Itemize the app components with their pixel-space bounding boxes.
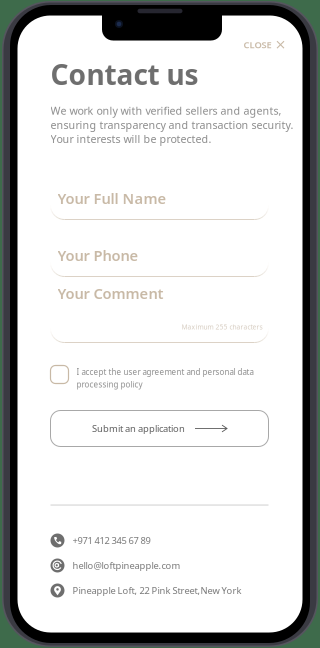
staticText: Pineapple Loft, 22 Pink Street,New York: [72, 584, 241, 597]
button[interactable]: hello@loftpineapple.com: [50, 557, 268, 573]
staticText: Your Comment: [57, 283, 163, 303]
staticText: processing policy: [76, 379, 142, 390]
button[interactable]: Pineapple Loft, 22 Pink Street,New York: [50, 582, 268, 598]
staticText: I accept the user agreement and personal…: [76, 366, 253, 377]
staticText: CLOSE: [243, 38, 271, 51]
staticText: We work only with verified sellers and a…: [50, 103, 281, 118]
button[interactable]: I accept the user agreement and personal…: [50, 365, 253, 390]
button[interactable]: CLOSE: [239, 34, 288, 55]
button[interactable]: +971 412 345 67 89: [50, 532, 268, 548]
staticText: +971 412 345 67 89: [72, 534, 150, 547]
staticText: Your Full Name: [57, 188, 166, 208]
button[interactable]: Submit an application: [50, 410, 268, 446]
staticText: Maximum 255 characters: [181, 322, 262, 331]
staticText: Your interests will be protected.: [50, 132, 211, 146]
staticText: ensuring transparency and transaction se…: [50, 118, 293, 132]
staticText: Contact us: [50, 55, 198, 93]
staticText: hello@loftpineapple.com: [72, 559, 180, 572]
staticText: Submit an application: [92, 422, 185, 435]
staticText: Your Phone: [57, 245, 138, 265]
